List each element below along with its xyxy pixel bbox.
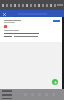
button[interactable]: Home [31, 93, 34, 96]
button[interactable]: Recents [38, 93, 41, 96]
button[interactable]: File type icon [4, 25, 7, 28]
button[interactable]: Add [52, 79, 58, 85]
button[interactable]: Close [2, 12, 6, 16]
button[interactable]: Screenshot [45, 93, 48, 96]
button[interactable]: Back [24, 93, 27, 96]
button[interactable]: More [52, 93, 55, 96]
button[interactable]: Action link [0, 17, 64, 42]
